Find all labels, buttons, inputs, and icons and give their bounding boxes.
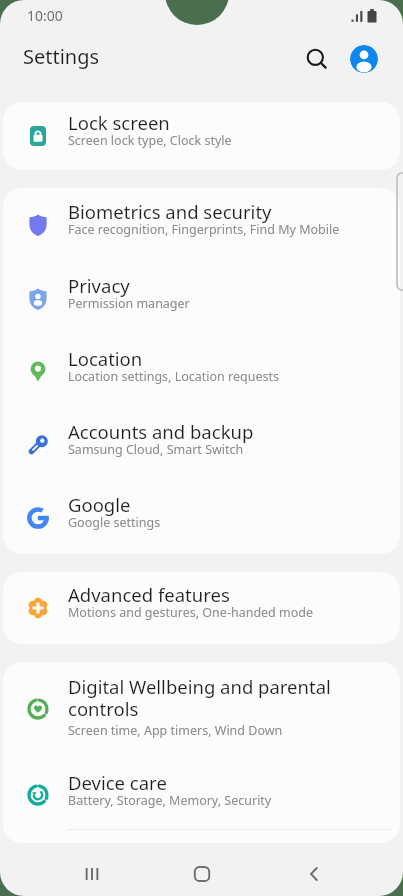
- button[interactable]: Device care: [3, 756, 400, 833]
- staticText: Screen lock type, Clock style: [68, 132, 232, 149]
- button[interactable]: Location: [3, 335, 400, 408]
- staticText: Accounts and backup: [68, 419, 254, 444]
- button[interactable]: Accounts and backup: [3, 408, 400, 481]
- staticText: Privacy: [68, 273, 130, 298]
- staticText: Samsung Cloud, Smart Switch: [68, 441, 244, 458]
- staticText: Google: [68, 492, 131, 517]
- staticText: Permission manager: [68, 295, 190, 312]
- staticText: Location settings, Location requests: [68, 368, 280, 385]
- staticText: Battery, Storage, Memory, Security: [68, 792, 272, 809]
- staticText: Location: [68, 346, 143, 371]
- button[interactable]: Advanced features: [3, 572, 400, 644]
- staticText: Device care: [68, 770, 167, 795]
- button[interactable]: [350, 45, 378, 73]
- button[interactable]: Biometrics and security: [3, 188, 400, 262]
- staticText: Motions and gestures, One-handed mode: [68, 604, 314, 621]
- button[interactable]: Privacy: [3, 262, 400, 335]
- staticText: Lock screen: [68, 110, 170, 135]
- staticText: Biometrics and security: [68, 199, 272, 224]
- button[interactable]: Lock screen: [3, 102, 400, 170]
- staticText: Digital Wellbeing and parental controls: [68, 674, 331, 722]
- staticText: Settings: [23, 43, 100, 70]
- button[interactable]: Digital Wellbeing and parental controls: [3, 662, 400, 756]
- staticText: Screen time, App timers, Wind Down: [68, 722, 283, 739]
- staticText: 10:00: [27, 6, 63, 25]
- staticText: Advanced features: [68, 582, 230, 607]
- button[interactable]: Google: [3, 481, 400, 554]
- button[interactable]: [302, 862, 326, 886]
- staticText: Google settings: [68, 514, 161, 531]
- button[interactable]: [80, 862, 104, 886]
- staticText: Face recognition, Fingerprints, Find My …: [68, 221, 340, 238]
- button[interactable]: [190, 862, 214, 886]
- button[interactable]: [305, 47, 329, 71]
